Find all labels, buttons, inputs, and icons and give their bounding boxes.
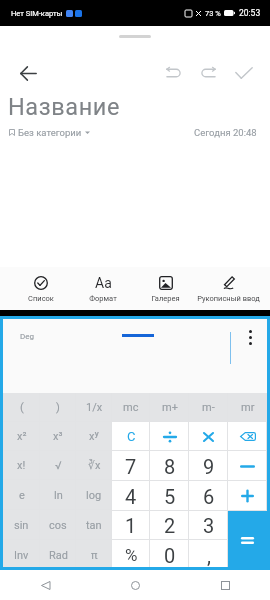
button[interactable]: Обзор bbox=[180, 570, 270, 600]
button[interactable]: sin bbox=[3, 510, 40, 540]
staticText: π bbox=[91, 549, 98, 562]
button[interactable]: x³ bbox=[40, 422, 76, 451]
staticText: ( bbox=[20, 401, 24, 414]
button[interactable]: Рукописный ввод bbox=[197, 267, 260, 310]
button[interactable]: Ещё bbox=[249, 330, 252, 345]
staticText: 1/x bbox=[86, 401, 103, 414]
button[interactable]: m- bbox=[189, 393, 228, 422]
staticText: 73 % bbox=[205, 9, 221, 18]
button[interactable]: Назад bbox=[10, 55, 46, 91]
staticText: sin bbox=[14, 519, 29, 532]
staticText: 1 bbox=[125, 514, 137, 537]
staticText: log bbox=[86, 489, 102, 502]
staticText: Галерея bbox=[151, 294, 180, 303]
button[interactable]: % bbox=[112, 540, 150, 570]
staticText: , bbox=[207, 544, 211, 567]
button[interactable]: Готово bbox=[226, 53, 262, 93]
button[interactable]: Минус bbox=[228, 451, 267, 481]
staticText: xʸ bbox=[89, 430, 99, 443]
button[interactable]: C bbox=[112, 422, 150, 451]
staticText: cos bbox=[49, 519, 67, 532]
button[interactable]: Повторить bbox=[191, 53, 226, 93]
staticText: Нет SIM-карты bbox=[11, 9, 63, 18]
button[interactable]: Удалить bbox=[228, 422, 267, 451]
button[interactable]: 7 bbox=[112, 451, 150, 481]
button[interactable]: m+ bbox=[150, 393, 189, 422]
button[interactable]: x! bbox=[3, 451, 40, 480]
staticText: 8 bbox=[164, 455, 176, 478]
button[interactable]: Aa bbox=[72, 267, 134, 310]
button[interactable]: e bbox=[3, 480, 40, 510]
staticText: 6 bbox=[203, 485, 215, 508]
button[interactable]: √ bbox=[40, 451, 76, 480]
button[interactable]: Плюс bbox=[228, 481, 267, 511]
staticText: 9 bbox=[203, 455, 215, 478]
button[interactable]: Умножить bbox=[189, 422, 228, 451]
staticText: 5 bbox=[164, 485, 176, 508]
staticText: x! bbox=[17, 459, 26, 472]
button[interactable]: 0 bbox=[150, 540, 189, 570]
button[interactable]: cos bbox=[40, 510, 76, 540]
button[interactable]: Галерея bbox=[134, 267, 197, 310]
staticText: ) bbox=[56, 401, 60, 414]
button[interactable]: 9 bbox=[189, 451, 228, 481]
staticText: m- bbox=[202, 401, 215, 414]
button[interactable]: Отменить bbox=[156, 53, 191, 93]
button[interactable]: log bbox=[76, 480, 112, 510]
button[interactable]: π bbox=[76, 540, 112, 570]
button[interactable]: 6 bbox=[189, 481, 228, 511]
staticText: % bbox=[125, 545, 138, 565]
button[interactable]: 3 bbox=[189, 511, 228, 540]
staticText: m+ bbox=[162, 401, 178, 414]
staticText: 4 bbox=[125, 485, 137, 508]
staticText: Rad bbox=[49, 549, 68, 562]
staticText: x³ bbox=[53, 430, 63, 443]
button[interactable]: ln bbox=[40, 480, 76, 510]
staticText: e bbox=[19, 489, 25, 502]
button[interactable]: Главный экран bbox=[90, 570, 180, 600]
staticText: Формат bbox=[89, 294, 117, 303]
staticText: Название bbox=[8, 93, 121, 121]
staticText: C bbox=[127, 429, 136, 444]
button[interactable]: , bbox=[189, 540, 228, 570]
button[interactable]: ) bbox=[40, 393, 76, 422]
button[interactable]: Список bbox=[10, 267, 72, 310]
staticText: ln bbox=[54, 489, 63, 502]
staticText: mr bbox=[241, 401, 255, 414]
button[interactable]: 4 bbox=[112, 481, 150, 511]
button[interactable]: ( bbox=[3, 393, 40, 422]
button[interactable]: 1/x bbox=[76, 393, 112, 422]
button[interactable]: Назад bbox=[0, 570, 90, 600]
button[interactable]: 5 bbox=[150, 481, 189, 511]
button[interactable]: tan bbox=[76, 510, 112, 540]
button[interactable]: mc bbox=[112, 393, 150, 422]
button[interactable]: Равно bbox=[228, 511, 267, 570]
staticText: Deg bbox=[20, 332, 34, 341]
staticText: 2 bbox=[164, 514, 176, 537]
staticText: ∛x bbox=[88, 459, 101, 472]
button[interactable]: Rad bbox=[40, 540, 76, 570]
button[interactable]: Разделить bbox=[150, 422, 189, 451]
button[interactable]: 8 bbox=[150, 451, 189, 481]
button[interactable]: Inv bbox=[3, 540, 40, 570]
button[interactable]: 2 bbox=[150, 511, 189, 540]
button[interactable]: x² bbox=[3, 422, 40, 451]
staticText: Рукописный ввод bbox=[197, 294, 260, 303]
button[interactable]: 1 bbox=[112, 511, 150, 540]
staticText: tan bbox=[86, 519, 102, 532]
staticText: 7 bbox=[125, 455, 137, 478]
staticText: √ bbox=[55, 459, 62, 472]
staticText: x² bbox=[17, 430, 27, 443]
staticText: Сегодня 20:48 bbox=[194, 127, 257, 138]
button[interactable]: mr bbox=[228, 393, 267, 422]
staticText: Inv bbox=[14, 549, 29, 562]
staticText: 0 bbox=[164, 544, 176, 567]
staticText: mc bbox=[123, 401, 139, 414]
staticText: Список bbox=[28, 294, 54, 303]
staticText: Без категории bbox=[18, 127, 82, 138]
button[interactable]: xʸ bbox=[76, 422, 112, 451]
staticText: 20:53 bbox=[239, 8, 261, 18]
staticText: 3 bbox=[203, 514, 215, 537]
button[interactable]: ∛x bbox=[76, 451, 112, 480]
button[interactable]: Без категории bbox=[9, 127, 90, 138]
